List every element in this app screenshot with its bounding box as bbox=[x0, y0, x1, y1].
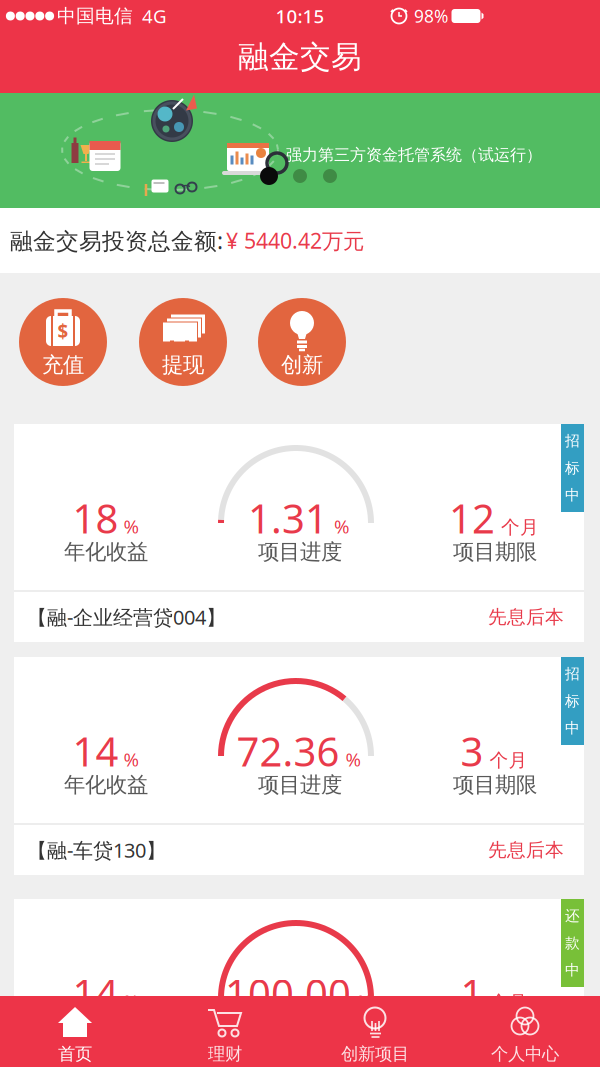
staticText: 个月 bbox=[489, 749, 527, 772]
staticText: 先息后本 bbox=[488, 605, 564, 628]
staticText: 标 bbox=[565, 692, 580, 710]
staticText: 1 bbox=[460, 966, 483, 1019]
staticText: 项目进度 bbox=[258, 539, 342, 565]
button[interactable]: 首页 bbox=[0, 996, 150, 1067]
staticText: 款 bbox=[565, 934, 580, 952]
staticText: 首页 bbox=[58, 1043, 92, 1065]
staticText: 72.36 bbox=[236, 724, 339, 777]
staticText: 创新 bbox=[281, 352, 323, 378]
staticText: 14 bbox=[72, 966, 118, 1019]
staticText: 融金交易 bbox=[238, 38, 362, 76]
button[interactable]: 个人中心 bbox=[450, 996, 600, 1067]
staticText: 充值 bbox=[42, 352, 84, 378]
button[interactable]: 提现 bbox=[139, 298, 227, 386]
staticText: 标 bbox=[565, 459, 580, 477]
staticText: % bbox=[334, 514, 350, 539]
button[interactable]: 创新项目 bbox=[300, 996, 450, 1067]
button[interactable]: 18 bbox=[14, 424, 584, 642]
staticText: 年化收益 bbox=[64, 1014, 148, 1040]
staticText: $ bbox=[57, 319, 68, 343]
staticText: 个月 bbox=[489, 991, 527, 1014]
staticText: 3 bbox=[460, 724, 483, 777]
button[interactable]: $ bbox=[19, 298, 107, 386]
staticText: 强力第三方资金托管系统（试运行） bbox=[286, 145, 542, 165]
staticText: % bbox=[345, 747, 361, 772]
staticText: % bbox=[357, 989, 373, 1014]
staticText: 招 bbox=[565, 432, 580, 450]
staticText: 招 bbox=[565, 665, 580, 683]
staticText: 中 bbox=[565, 486, 580, 504]
staticText: 项目期限 bbox=[453, 772, 537, 798]
staticText: 【融-车贷130】 bbox=[27, 837, 166, 863]
staticText: 12 bbox=[449, 491, 495, 544]
staticText: 理财 bbox=[208, 1043, 242, 1065]
staticText: 14 bbox=[72, 724, 118, 777]
staticText: 年化收益 bbox=[64, 772, 148, 798]
staticText: 项目期限 bbox=[453, 539, 537, 565]
button[interactable]: 创新 bbox=[258, 298, 346, 386]
staticText: 年化收益 bbox=[64, 539, 148, 565]
button[interactable]: 强力第三方资金托管系统（试运行） bbox=[0, 93, 600, 208]
staticText: 中 bbox=[565, 961, 580, 979]
staticText: 10:15 bbox=[275, 4, 324, 28]
staticText: 还 bbox=[565, 907, 580, 925]
staticText: 100.00 bbox=[225, 966, 351, 1019]
staticText: 中 bbox=[565, 719, 580, 737]
staticText: 融金交易投资总金额: bbox=[10, 225, 223, 255]
staticText: % bbox=[123, 747, 139, 772]
staticText: 项目进度 bbox=[258, 772, 342, 798]
staticText: % bbox=[123, 514, 139, 539]
staticText: 项目期限 bbox=[453, 1014, 537, 1040]
staticText: 中国电信 bbox=[57, 4, 133, 27]
staticText: 18 bbox=[72, 491, 118, 544]
staticText: ¥ 5440.42万元 bbox=[226, 226, 364, 255]
staticText: 个人中心 bbox=[491, 1043, 559, 1065]
staticText: 4G bbox=[142, 4, 167, 28]
staticText: 先息后本 bbox=[488, 838, 564, 861]
staticText: % bbox=[123, 989, 139, 1014]
staticText: 个月 bbox=[501, 516, 539, 539]
staticText: 1.31 bbox=[248, 491, 328, 544]
staticText: 创新项目 bbox=[341, 1043, 409, 1065]
staticText: 98% bbox=[414, 4, 448, 27]
button[interactable]: 14 bbox=[14, 657, 584, 875]
button[interactable]: 14 bbox=[14, 899, 584, 1067]
staticText: 提现 bbox=[162, 352, 204, 378]
staticText: 【融-企业经营贷004】 bbox=[27, 604, 226, 630]
button[interactable]: 理财 bbox=[150, 996, 300, 1067]
